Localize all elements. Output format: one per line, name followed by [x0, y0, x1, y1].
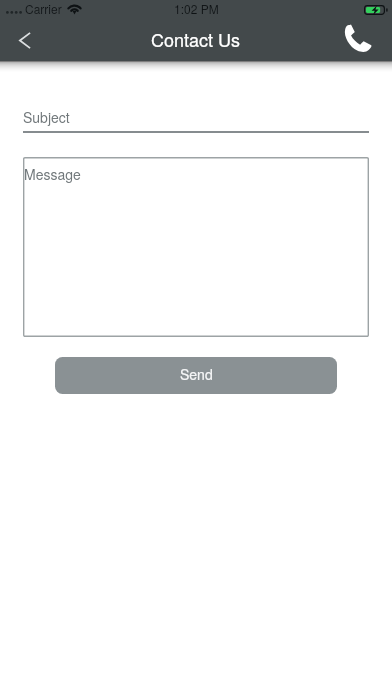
button[interactable]: Send [55, 357, 337, 394]
button[interactable]: Back [0, 20, 50, 61]
staticText: Carrier [25, 0, 62, 17]
button[interactable]: Subject [23, 107, 369, 133]
staticText: 1:02 PM [174, 0, 219, 17]
staticText: Contact Us [151, 26, 241, 52]
button[interactable]: Message [23, 157, 369, 337]
staticText: Subject [23, 107, 70, 127]
staticText: Send [180, 364, 213, 384]
button[interactable]: Call [330, 20, 392, 61]
staticText: Message [24, 164, 81, 184]
